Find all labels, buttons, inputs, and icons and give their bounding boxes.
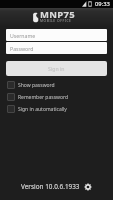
button[interactable]: Sign in [6,61,107,76]
button[interactable]: Settings [83,182,92,191]
staticText: Sign in [48,65,65,72]
button[interactable]: Password [6,42,107,54]
button[interactable]: Remember password [7,93,113,101]
staticText: Show password [18,82,55,89]
button[interactable]: Username [6,29,107,41]
staticText: MOBILE OFFICE [40,18,72,23]
staticText: Username [10,32,36,39]
staticText: Sign in automatically [18,106,67,113]
staticText: Password [10,45,34,52]
staticText: Version 10.0.6.1933 [21,182,80,191]
staticText: Remember password [18,94,69,101]
staticText: MNP75 [40,8,75,21]
button[interactable]: Sign in automatically [7,105,113,113]
staticText: 09:33 [95,0,110,8]
button[interactable]: Show password [7,81,113,89]
